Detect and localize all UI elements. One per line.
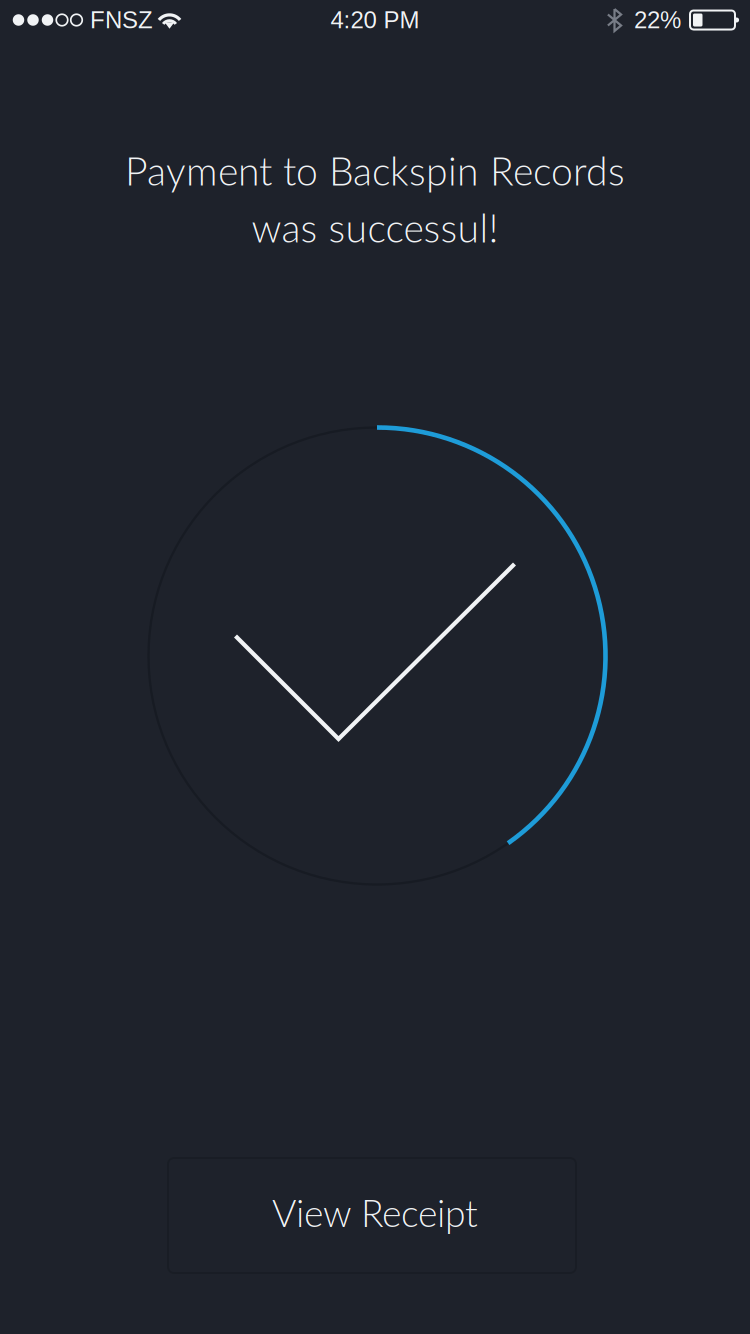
button[interactable]: View Receipt [168,1158,576,1273]
staticText: 4:20 PM [330,7,419,33]
staticText: Payment to Backspin Records [125,147,625,194]
staticText: was successul! [251,204,498,251]
staticText: FNSZ [90,7,153,33]
staticText: View Receipt [272,1190,478,1235]
staticText: 22% [634,7,681,33]
